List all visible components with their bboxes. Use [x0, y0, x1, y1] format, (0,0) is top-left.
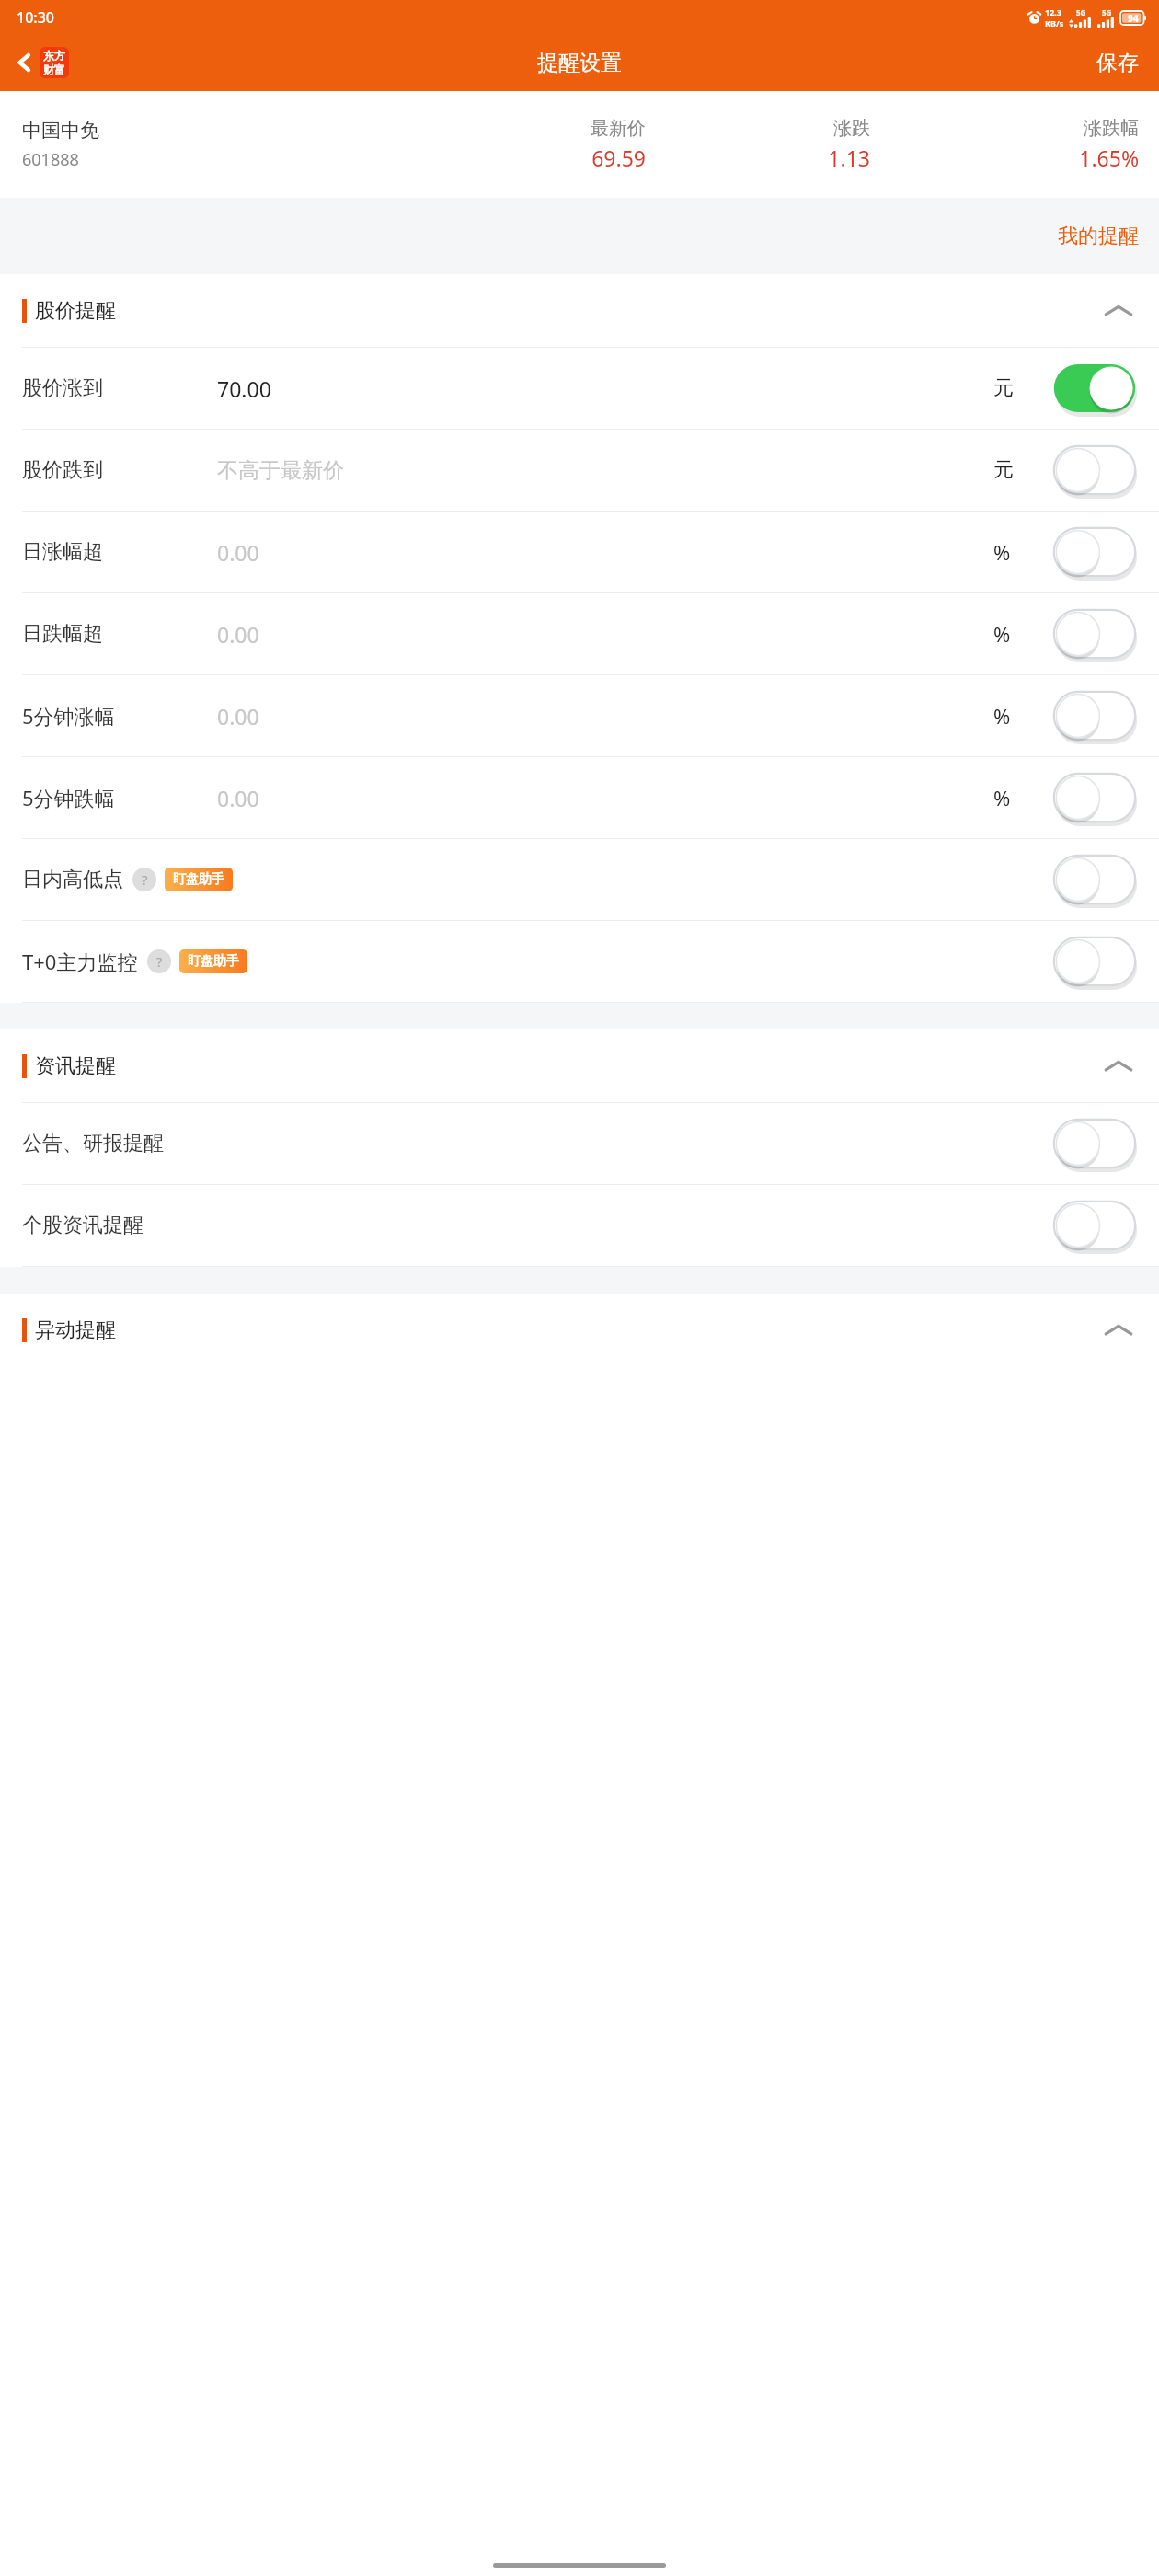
button[interactable]: 保存	[1076, 40, 1159, 86]
staticText: 0.00	[217, 702, 993, 730]
staticText: 涨跌幅	[1084, 117, 1139, 140]
staticText: 东方	[43, 49, 65, 63]
staticText: T+0主力监控	[22, 948, 138, 975]
button[interactable]: 股价跌到	[0, 430, 1159, 511]
staticText: 个股资讯提醒	[22, 1213, 217, 1238]
staticText: 最新价	[591, 117, 646, 140]
staticText: 异动提醒	[35, 1317, 116, 1343]
button[interactable]: 说明	[132, 868, 156, 891]
staticText: 10:30	[17, 7, 54, 28]
staticText: 5G	[1076, 7, 1086, 17]
staticText: 1.13	[828, 144, 870, 172]
staticText: 资讯提醒	[35, 1053, 116, 1079]
button[interactable]: 开关 已关闭	[1050, 1118, 1139, 1169]
staticText: 12.3	[1045, 6, 1061, 17]
staticText: 涨跌	[833, 117, 870, 140]
staticText: 日涨幅超	[22, 539, 217, 565]
staticText: %	[993, 620, 1050, 648]
button[interactable]: 我的提醒	[1038, 213, 1159, 260]
staticText: %	[993, 702, 1050, 730]
staticText: 5分钟跌幅	[22, 784, 217, 811]
staticText: 股价跌到	[22, 457, 217, 483]
staticText: 0.00	[217, 620, 993, 649]
staticText: 0.00	[217, 538, 993, 567]
button[interactable]: 开关 已关闭	[1050, 854, 1139, 905]
staticText: 70.00	[217, 374, 993, 403]
staticText: 5G	[1102, 7, 1112, 17]
staticText: 财富	[43, 63, 65, 76]
button[interactable]: 开关 已关闭	[1050, 936, 1139, 987]
button[interactable]: 返回 东方财富	[9, 41, 75, 84]
button[interactable]: 5分钟涨幅	[0, 675, 1159, 756]
other: 折叠	[1104, 1058, 1133, 1075]
staticText: 公告、研报提醒	[22, 1131, 217, 1156]
staticText: ?	[142, 870, 148, 889]
staticText: 69.59	[591, 144, 646, 172]
staticText: 日内高低点	[22, 867, 123, 892]
staticText: 0.00	[217, 784, 993, 812]
staticText: 日跌幅超	[22, 621, 217, 647]
button[interactable]: 5分钟跌幅	[0, 757, 1159, 838]
staticText: 股价提醒	[35, 298, 116, 324]
button[interactable]: 异动提醒	[0, 1294, 1159, 1366]
staticText: 股价涨到	[22, 375, 217, 401]
button[interactable]: 日涨幅超	[0, 512, 1159, 592]
button[interactable]: 日跌幅超	[0, 593, 1159, 674]
staticText: %	[993, 784, 1050, 811]
button[interactable]: 资讯提醒	[0, 1029, 1159, 1102]
staticText: 5分钟涨幅	[22, 702, 217, 730]
other: 折叠	[1104, 303, 1133, 319]
staticText: 不高于最新价	[217, 457, 993, 484]
button[interactable]: 说明	[147, 949, 171, 973]
staticText: ?	[156, 952, 163, 971]
staticText: 盯盘助手	[188, 953, 239, 970]
staticText: 元	[993, 457, 1050, 483]
staticText: 提醒设置	[537, 50, 622, 76]
button[interactable]: T+0主力监控	[0, 921, 1159, 1002]
staticText: 601888	[22, 148, 79, 171]
staticText: 94	[1128, 12, 1139, 25]
button[interactable]: 股价涨到	[0, 348, 1159, 429]
button[interactable]: 个股资讯提醒	[0, 1185, 1159, 1266]
button[interactable]: 日内高低点	[0, 839, 1159, 920]
button[interactable]: 开关 已关闭	[1050, 1200, 1139, 1251]
staticText: 中国中免	[22, 119, 99, 143]
staticText: 元	[993, 375, 1050, 401]
staticText: KB/s	[1045, 17, 1064, 29]
button[interactable]: 开关 已关闭	[1050, 690, 1139, 742]
button[interactable]: 股价提醒	[0, 274, 1159, 347]
button[interactable]: 开关 已开启	[1050, 362, 1139, 414]
button[interactable]: 开关 已关闭	[1050, 444, 1139, 496]
button[interactable]: 开关 已关闭	[1050, 526, 1139, 578]
button[interactable]: 开关 已关闭	[1050, 772, 1139, 823]
button[interactable]: 开关 已关闭	[1050, 608, 1139, 660]
other: 折叠	[1104, 1322, 1133, 1339]
staticText: %	[993, 538, 1050, 566]
staticText: 盯盘助手	[173, 871, 224, 888]
staticText: 1.65%	[1079, 144, 1139, 172]
button[interactable]: 公告、研报提醒	[0, 1103, 1159, 1184]
